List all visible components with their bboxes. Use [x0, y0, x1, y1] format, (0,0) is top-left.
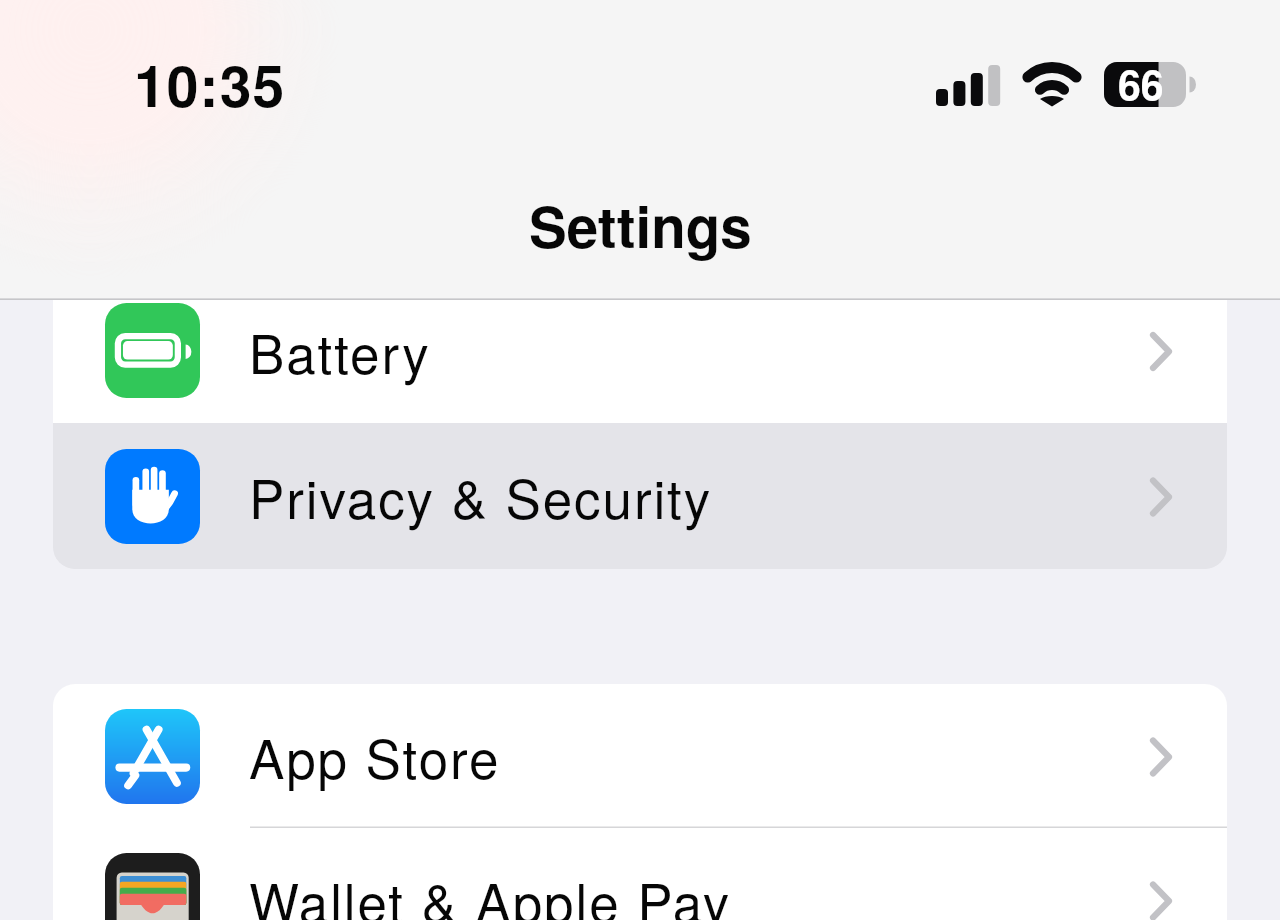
other: App Store [105, 709, 200, 804]
other: Privacy and Security [105, 449, 200, 544]
staticText: Privacy & Security [249, 458, 713, 534]
other: Battery [105, 303, 200, 398]
staticText: Wallet & Apple Pay [249, 862, 732, 920]
button[interactable]: Privacy and Security [53, 423, 1227, 569]
button[interactable]: Battery [53, 300, 1227, 423]
other: Wallet and Apple Pay [105, 853, 200, 920]
staticText: Settings [529, 184, 752, 265]
button[interactable]: App Store [53, 684, 1227, 828]
staticText: 10:35 [134, 43, 286, 125]
button[interactable]: Wallet and Apple Pay [53, 828, 1227, 920]
staticText: App Store [249, 718, 501, 794]
staticText: 66 [1118, 54, 1164, 113]
staticText: Battery [249, 313, 431, 389]
